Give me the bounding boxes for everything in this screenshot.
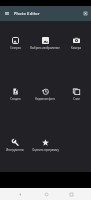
button[interactable]: Recent apps [65, 188, 77, 200]
button[interactable]: Grid view [79, 6, 91, 21]
button[interactable]: Недавние фото [30, 88, 60, 101]
staticText: Инструменты [6, 148, 24, 152]
staticText: Оценить программу [32, 148, 59, 152]
staticText: Камера [71, 46, 81, 50]
button[interactable]: Инструменты [0, 139, 30, 152]
staticText: Слои [73, 97, 80, 101]
button[interactable]: Выбрать изображение [30, 37, 60, 50]
button[interactable]: Open navigation menu [0, 6, 14, 21]
button[interactable]: Слои [61, 88, 91, 101]
button[interactable]: Создать [0, 88, 30, 101]
staticText: Галерея [10, 46, 21, 50]
staticText: Создать [10, 97, 21, 101]
staticText: Недавние фото [35, 97, 55, 101]
button[interactable]: Home [40, 188, 52, 200]
staticText: Выбрать изображение [30, 46, 60, 50]
button[interactable]: Оценить программу [30, 139, 60, 152]
button[interactable]: Галерея [0, 37, 30, 50]
button[interactable]: Back [14, 188, 26, 200]
staticText: Photo Editor [14, 11, 40, 16]
button[interactable]: Камера [61, 37, 91, 50]
